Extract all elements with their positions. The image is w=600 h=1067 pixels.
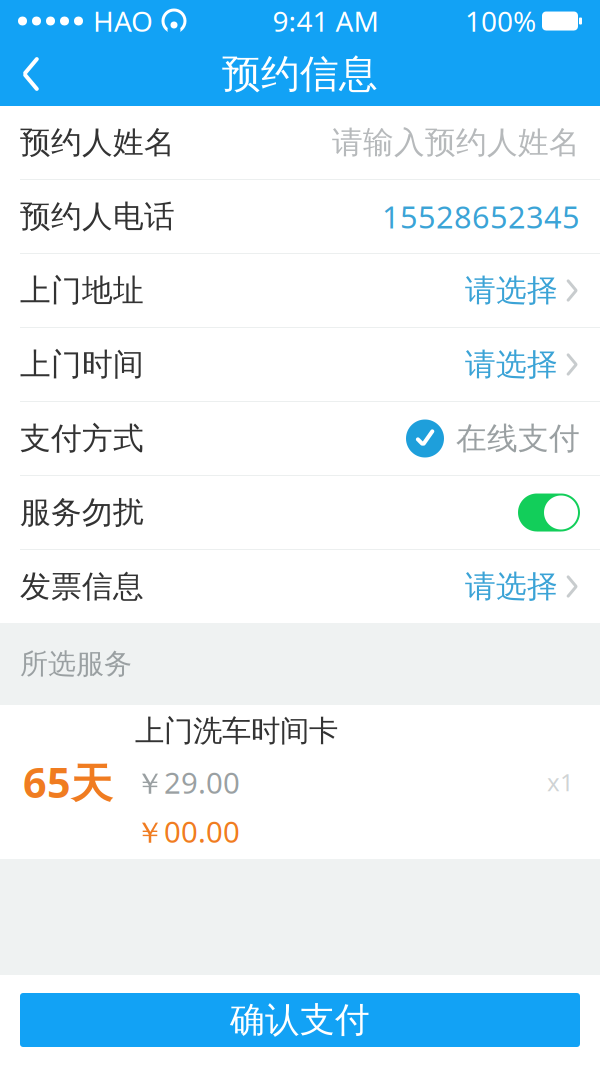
staticText: 预约人姓名 bbox=[20, 124, 175, 161]
staticText: 上门时间 bbox=[20, 346, 144, 383]
button[interactable]: 支付方式 bbox=[0, 402, 600, 475]
button[interactable]: 上门时间 bbox=[0, 328, 600, 401]
staticText: x1 bbox=[547, 766, 574, 798]
staticText: 支付方式 bbox=[20, 420, 144, 457]
staticText: 请选择 bbox=[465, 346, 558, 383]
staticText: 请选择 bbox=[465, 272, 558, 309]
staticText: 在线支付 bbox=[456, 420, 580, 457]
staticText: 预约信息 bbox=[222, 50, 378, 98]
staticText: HAO bbox=[93, 2, 153, 40]
button[interactable]: 65天 bbox=[0, 705, 600, 859]
staticText: 上门地址 bbox=[20, 272, 144, 309]
staticText: 预约人电话 bbox=[20, 198, 175, 235]
staticText: 服务勿扰 bbox=[20, 494, 144, 531]
staticText: ￥00.00 bbox=[135, 812, 240, 851]
staticText: 确认支付 bbox=[230, 999, 370, 1041]
staticText: 发票信息 bbox=[20, 568, 144, 605]
staticText: 15528652345 bbox=[382, 196, 580, 237]
button[interactable]: Back bbox=[0, 43, 62, 105]
staticText: 100% bbox=[465, 2, 536, 40]
staticText: 9:41 AM bbox=[272, 2, 378, 40]
button[interactable]: 服务勿扰 bbox=[0, 476, 600, 549]
button[interactable]: 确认支付 bbox=[20, 993, 580, 1047]
staticText: 所选服务 bbox=[20, 647, 132, 681]
button[interactable]: 上门地址 bbox=[0, 254, 600, 327]
staticText: 请选择 bbox=[465, 568, 558, 605]
staticText: ￥29.00 bbox=[135, 763, 240, 802]
staticText: 65天 bbox=[23, 755, 112, 809]
staticText: 上门洗车时间卡 bbox=[135, 713, 338, 749]
staticText: 请输入预约人姓名 bbox=[332, 124, 580, 161]
button[interactable]: 发票信息 bbox=[0, 550, 600, 623]
